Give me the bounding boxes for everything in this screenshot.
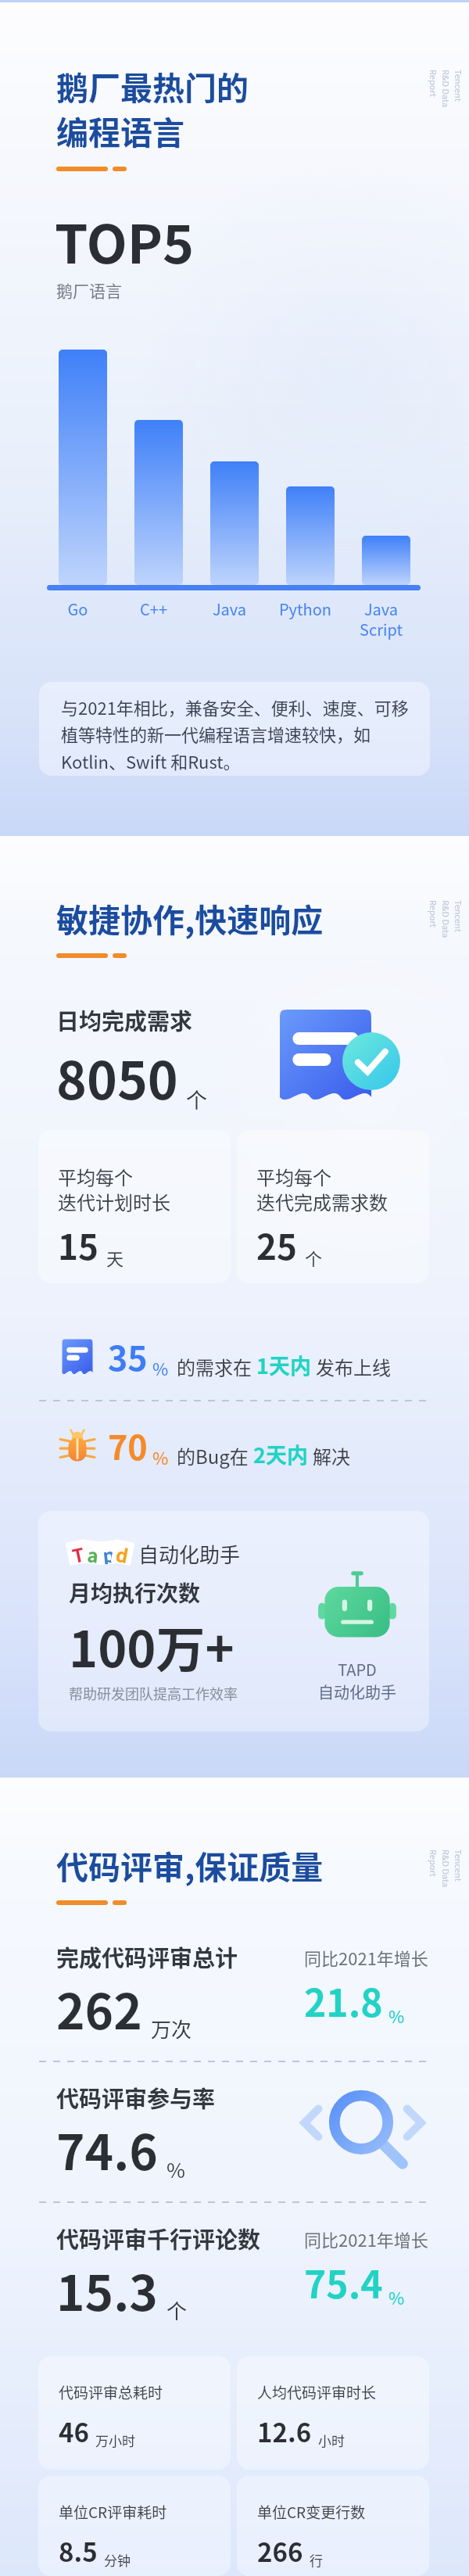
other: 日均完成需求 [280,1003,405,1105]
staticText: 262 [56,1973,142,2043]
staticText: 与2021年相比，兼备安全、便利、速度、可移 植等特性的新一代编程语言增速较快，… [61,694,409,773]
staticText: TAPD 自动化助手 [318,1658,396,1703]
button[interactable]: 单位CR评审耗时 [38,2476,231,2576]
staticText: 8050 [56,1039,178,1114]
staticText: 日均完成需求 [56,1003,193,1036]
staticText: C++ [116,597,192,620]
button[interactable]: 单位CR变更行数 [237,2476,429,2576]
staticText: Tencent R&D Data Report [428,70,465,115]
staticText: 同比2021年增长 [304,1945,428,1970]
staticText: 12.6 [257,2413,312,2450]
staticText: 自动化助手 [138,1539,241,1569]
button[interactable]: 代码评审总耗时 [38,2356,231,2470]
staticText: T [70,1540,86,1565]
staticText: 单位CR变更行数 [257,2501,366,2523]
staticText: 平均每个 迭代计划时长 [58,1163,170,1215]
staticText: 敏捷协作,快速响应 [56,895,324,941]
button[interactable]: 平均每个 迭代完成需求数 [237,1130,429,1283]
staticText: 帮助研发团队提高工作效率 [69,1683,238,1703]
staticText: 解决 [313,1442,350,1469]
staticText: % [388,2284,405,2309]
staticText: 代码评审千行评论数 [56,2222,261,2255]
staticText: 平均每个 迭代完成需求数 [256,1163,388,1215]
staticText: 月均执行次数 [69,1577,201,1609]
button[interactable]: 与2021年相比，兼备安全、便利、速度、可移 植等特性的新一代编程语言增速较快，… [39,682,430,776]
staticText: TOP5 [55,202,195,278]
staticText: 万小时 [95,2431,135,2450]
staticText: 21.8 [304,1973,383,2028]
staticText: 个 [186,1084,207,1114]
staticText: 25 [256,1220,297,1270]
staticText: 35 [108,1332,148,1380]
staticText: Tencent R&D Data Report [428,900,465,945]
staticText: % [152,1444,169,1469]
staticText: Tencent R&D Data Report [428,1849,465,1895]
staticText: 发布上线 [316,1353,391,1380]
staticText: 2天内 [253,1439,308,1469]
staticText: 266 [257,2532,303,2570]
staticText: 46 [59,2413,89,2450]
other: TAPD 自动化助手 [317,1567,398,1649]
staticText: 的需求在 [177,1353,252,1380]
staticText: 人均代码评审时长 [257,2381,377,2403]
staticText: 8.5 [59,2532,98,2570]
staticText: 75.4 [304,2255,383,2309]
staticText: 行 [310,2550,323,2570]
staticText: Go [40,597,116,620]
staticText: 100万+ [69,1610,234,1681]
staticText: d [114,1540,131,1565]
staticText: 同比2021年增长 [304,2226,428,2251]
staticText: 万次 [151,2014,192,2043]
staticText: 代码评审总耗时 [59,2381,163,2403]
staticText: 单位CR评审耗时 [59,2501,167,2523]
staticText: 的Bug在 [177,1442,249,1469]
staticText: 个 [166,2295,188,2325]
button[interactable]: T [38,1511,429,1731]
staticText: 分钟 [104,2550,131,2570]
staticText: 小时 [318,2431,345,2450]
staticText: 天 [106,1245,124,1270]
staticText: 70 [108,1421,148,1469]
button[interactable]: 35 [58,1332,469,1380]
staticText: % [166,2154,185,2184]
button[interactable]: 平均每个 迭代计划时长 [38,1130,231,1283]
button[interactable]: 人均代码评审时长 [237,2356,429,2470]
staticText: 鹅厂语言 [56,278,122,302]
staticText: 完成代码评审总计 [56,1940,238,1973]
other: 代码评审 [283,2081,439,2175]
staticText: a [86,1540,101,1565]
staticText: % [152,1355,169,1380]
staticText: Java Script [343,597,419,640]
staticText: p [101,1540,116,1565]
staticText: Java [192,597,267,620]
staticText: 个 [305,1245,323,1270]
staticText: 15.3 [56,2255,158,2325]
staticText: % [388,2003,405,2028]
staticText: 15 [58,1220,98,1270]
staticText: 代码评审,保证质量 [56,1842,324,1888]
staticText: Python [267,597,343,620]
button[interactable]: 70 [58,1421,469,1469]
staticText: 代码评审参与率 [56,2081,216,2114]
staticText: 74.6 [56,2114,158,2184]
staticText: 鹅厂最热门的 编程语言 [56,63,249,154]
staticText: 1天内 [256,1350,311,1380]
